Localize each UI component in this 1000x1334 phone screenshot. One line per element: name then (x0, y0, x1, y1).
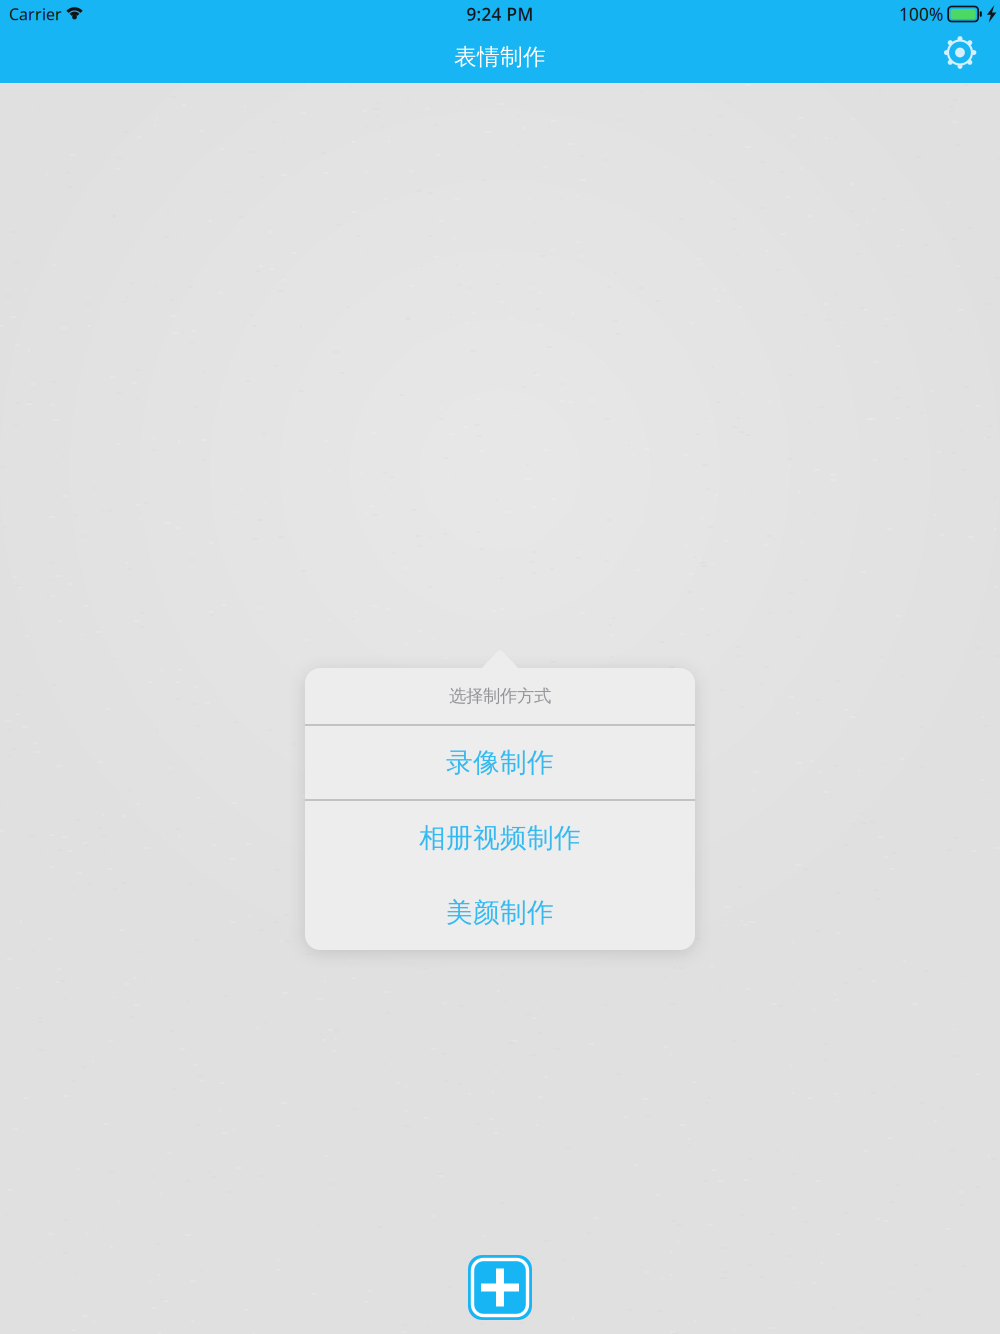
staticText: 选择制作方式 (449, 685, 551, 707)
button[interactable]: 相册视频制作 (305, 801, 695, 875)
button[interactable]: 录像制作 (305, 726, 695, 799)
staticText: 美颜制作 (446, 896, 554, 929)
staticText: Carrier (9, 3, 62, 25)
button[interactable]: Add (468, 1255, 532, 1320)
staticText: 9:24 PM (466, 2, 533, 25)
staticText: 100% (899, 2, 943, 25)
button[interactable]: Settings (931, 30, 989, 75)
staticText: 相册视频制作 (419, 822, 581, 854)
button[interactable]: 美颜制作 (305, 875, 695, 950)
staticText: 表情制作 (454, 43, 546, 71)
staticText: 录像制作 (446, 746, 554, 779)
